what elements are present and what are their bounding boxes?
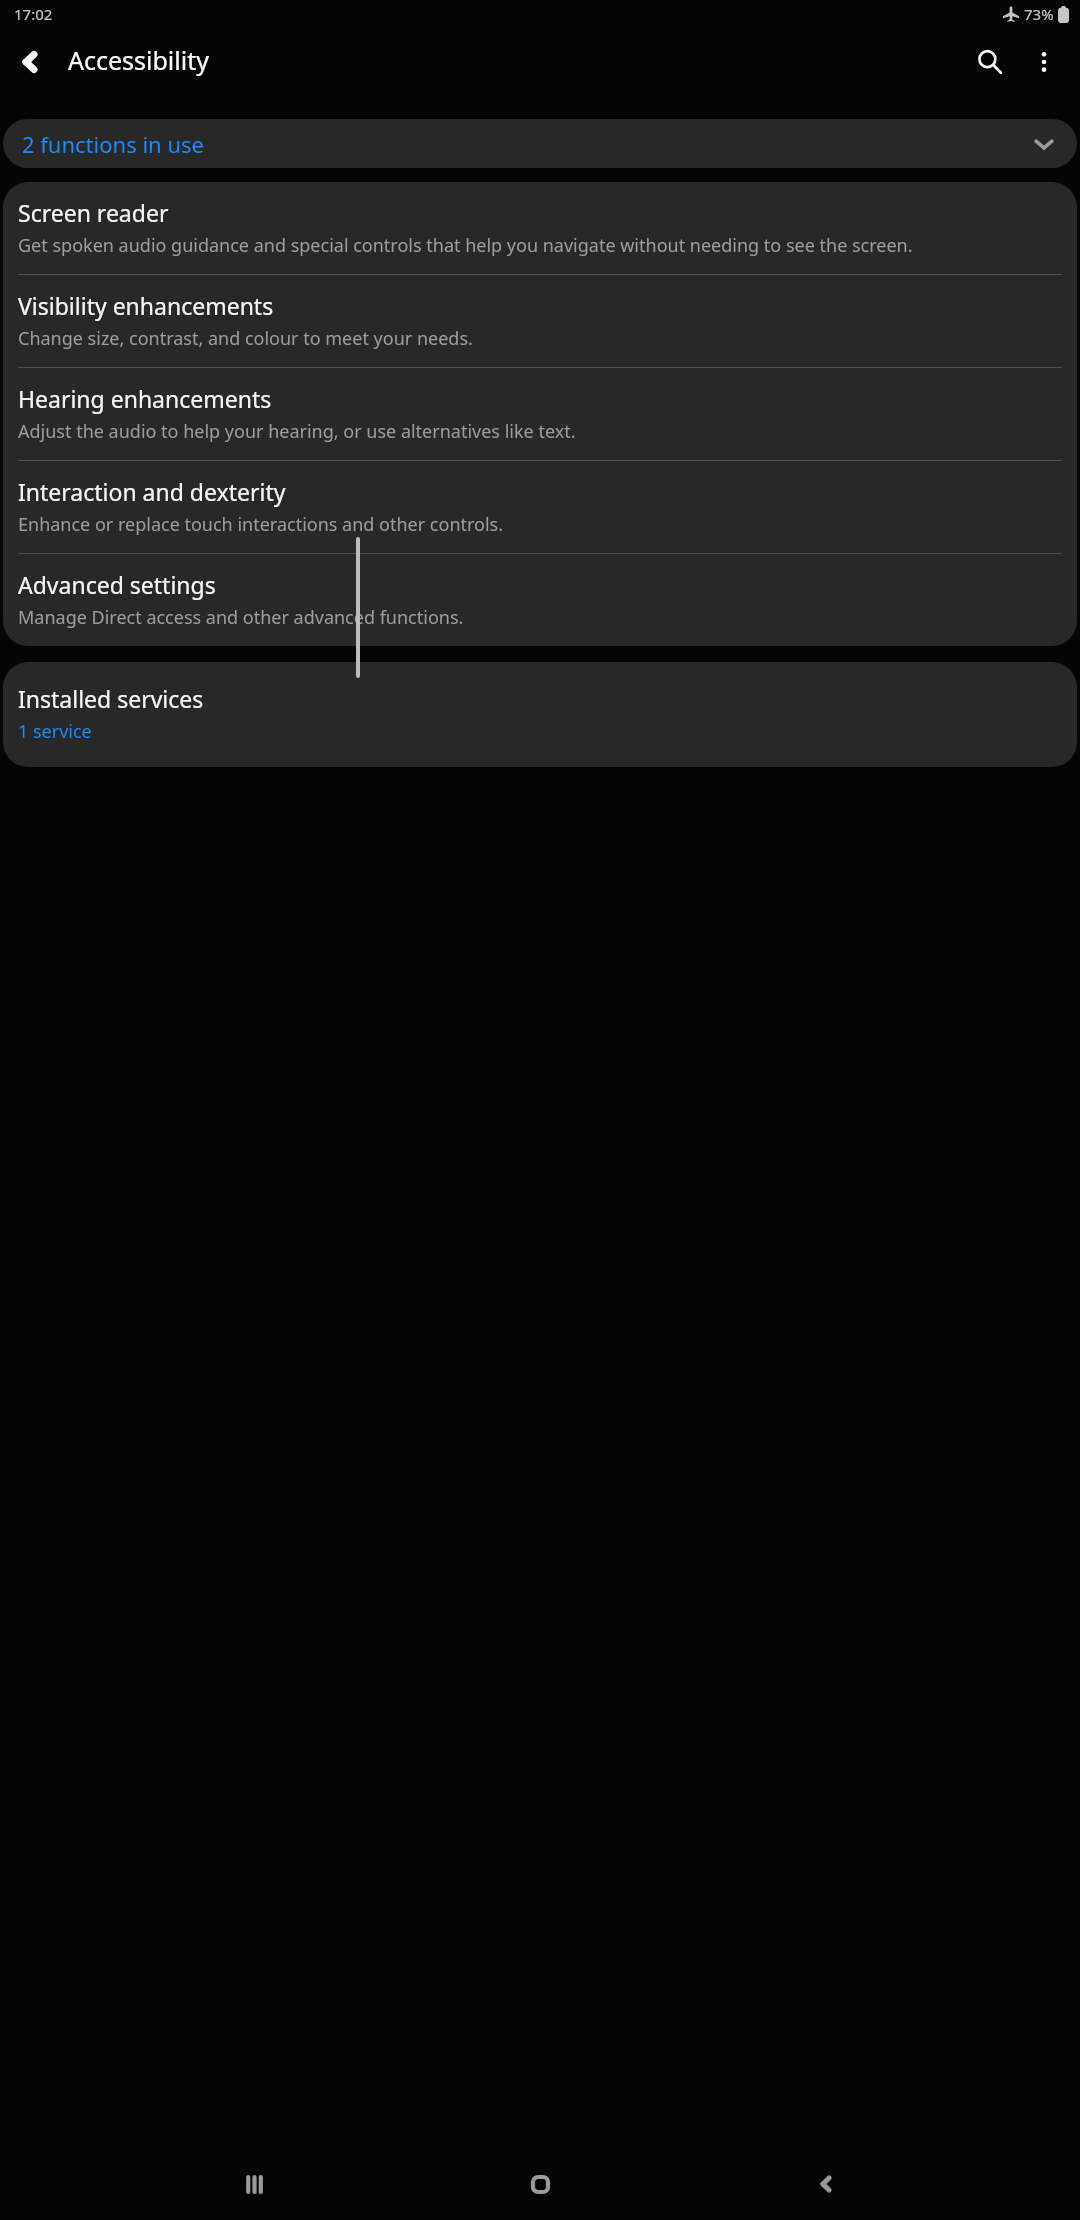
button[interactable]: Back (794, 2152, 858, 2216)
staticText: Advanced settings (18, 569, 216, 600)
button[interactable]: Back (4, 36, 56, 88)
staticText: 73% (1024, 4, 1054, 24)
button[interactable]: Visibility enhancements (3, 275, 1077, 367)
staticText: Screen reader (18, 197, 169, 228)
button[interactable]: Advanced settings (3, 554, 1077, 646)
button[interactable]: Search (963, 35, 1017, 89)
button[interactable]: Hearing enhancements (3, 368, 1077, 460)
staticText: Hearing enhancements (18, 383, 272, 414)
button[interactable]: 2 functions in use (3, 119, 1077, 168)
staticText: 1 service (18, 719, 92, 744)
staticText: Enhance or replace touch interactions an… (18, 512, 504, 537)
staticText: Manage Direct access and other advanced … (18, 605, 464, 630)
button[interactable]: More options (1017, 35, 1071, 89)
staticText: 17:02 (14, 4, 53, 24)
button[interactable]: Home (508, 2152, 572, 2216)
button[interactable]: Installed services (3, 662, 1077, 767)
staticText: Adjust the audio to help your hearing, o… (18, 419, 576, 444)
staticText: Change size, contrast, and colour to mee… (18, 326, 473, 351)
staticText: Get spoken audio guidance and special co… (18, 233, 913, 258)
staticText: Installed services (18, 683, 204, 714)
button[interactable]: Recents (222, 2152, 286, 2216)
staticText: 2 functions in use (22, 129, 1033, 159)
staticText: Accessibility (68, 43, 209, 77)
staticText: Visibility enhancements (18, 290, 274, 321)
button[interactable]: Screen reader (3, 182, 1077, 274)
staticText: Interaction and dexterity (18, 476, 286, 507)
button[interactable]: Interaction and dexterity (3, 461, 1077, 553)
